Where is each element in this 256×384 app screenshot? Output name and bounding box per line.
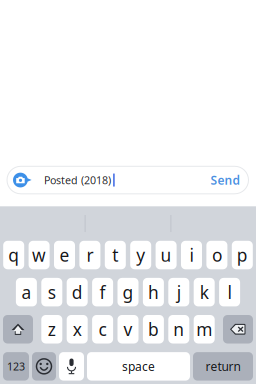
button[interactable]: Dictation: [59, 352, 84, 381]
button[interactable]: return: [193, 352, 253, 381]
staticText: t: [112, 243, 118, 266]
button[interactable]: u: [156, 241, 177, 269]
button[interactable]: m: [194, 315, 215, 343]
button[interactable]: t: [105, 241, 126, 269]
staticText: return: [205, 358, 240, 374]
staticText: z: [48, 318, 56, 341]
staticText: e: [59, 243, 69, 266]
button[interactable]: Send: [210, 172, 248, 188]
staticText: r: [86, 243, 93, 266]
button[interactable]: e: [54, 241, 75, 269]
staticText: 123: [7, 359, 25, 373]
staticText: k: [200, 281, 209, 304]
staticText: x: [73, 318, 82, 341]
staticText: d: [72, 281, 83, 304]
staticText: o: [212, 243, 222, 266]
button[interactable]: c: [92, 315, 113, 343]
staticText: p: [237, 243, 248, 266]
button[interactable]: l: [219, 278, 240, 306]
button[interactable]: Emoji: [32, 352, 56, 381]
staticText: n: [173, 318, 184, 341]
button[interactable]: g: [117, 278, 138, 306]
staticText: b: [148, 318, 159, 341]
button[interactable]: n: [168, 315, 189, 343]
staticText: u: [161, 243, 172, 266]
button[interactable]: r: [79, 241, 100, 269]
button[interactable]: p: [232, 241, 253, 269]
button[interactable]: h: [143, 278, 164, 306]
button[interactable]: space: [87, 352, 190, 381]
staticText: m: [196, 318, 212, 341]
button[interactable]: f: [92, 278, 113, 306]
staticText: s: [48, 281, 56, 304]
button[interactable]: b: [143, 315, 164, 343]
staticText: q: [8, 243, 19, 266]
button[interactable]: a: [16, 278, 37, 306]
staticText: i: [189, 243, 193, 266]
button[interactable]: Shift: [3, 315, 33, 343]
button[interactable]: y: [130, 241, 151, 269]
staticText: l: [228, 281, 232, 304]
button[interactable]: d: [67, 278, 88, 306]
staticText: Posted (2018): [44, 173, 111, 187]
button[interactable]: s: [41, 278, 62, 306]
button[interactable]: o: [206, 241, 227, 269]
button[interactable]: w: [29, 241, 50, 269]
staticText: Send: [210, 172, 240, 188]
staticText: f: [100, 281, 106, 304]
button[interactable]: z: [41, 315, 62, 343]
staticText: w: [32, 243, 46, 266]
staticText: y: [136, 243, 145, 266]
button[interactable]: q: [3, 241, 24, 269]
staticText: g: [122, 281, 133, 304]
staticText: v: [123, 318, 132, 341]
staticText: j: [177, 281, 181, 304]
staticText: space: [122, 358, 155, 374]
staticText: a: [21, 281, 31, 304]
staticText: h: [148, 281, 159, 304]
button[interactable]: i: [181, 241, 202, 269]
button[interactable]: v: [117, 315, 138, 343]
button[interactable]: x: [67, 315, 88, 343]
button[interactable]: 123: [3, 352, 29, 381]
button[interactable]: Delete: [223, 315, 253, 343]
button[interactable]: j: [168, 278, 189, 306]
staticText: c: [99, 318, 107, 341]
button[interactable]: k: [194, 278, 215, 306]
